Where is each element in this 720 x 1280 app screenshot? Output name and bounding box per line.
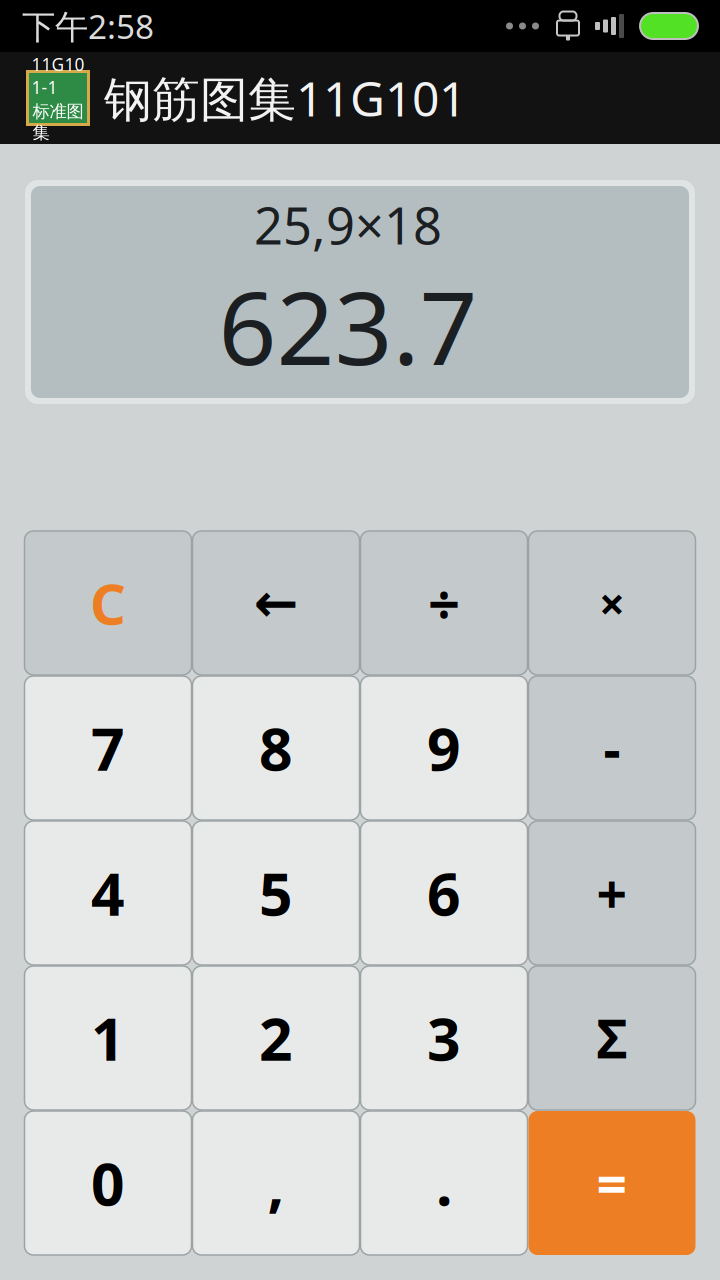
staticText: 标准图集 [32, 101, 83, 143]
staticText: 6 [427, 854, 461, 932]
staticText: + [596, 858, 627, 928]
button[interactable]: 7 [24, 676, 191, 820]
button[interactable]: 2 [192, 966, 359, 1110]
button[interactable]: - [528, 676, 695, 820]
staticText: , [267, 1144, 284, 1222]
staticText: - [603, 713, 620, 783]
button[interactable]: ÷ [360, 531, 527, 675]
staticText: 2 [259, 999, 293, 1077]
staticText: 4 [91, 854, 125, 932]
staticText: . [436, 1144, 452, 1222]
staticText: 9 [427, 709, 461, 787]
button[interactable]: 3 [360, 966, 527, 1110]
button[interactable]: Σ [528, 966, 695, 1110]
staticText: 5 [259, 854, 293, 932]
staticText: 3 [427, 999, 461, 1077]
button[interactable]: + [528, 821, 695, 965]
staticText: Σ [596, 1003, 627, 1073]
staticText: = [596, 1148, 627, 1218]
staticText: 25,9×18 [254, 191, 442, 258]
staticText: × [599, 573, 625, 633]
staticText: 7 [91, 709, 125, 787]
button[interactable]: 6 [360, 821, 527, 965]
button[interactable]: C [24, 531, 191, 675]
button[interactable]: , [192, 1111, 359, 1255]
button[interactable]: = [528, 1111, 695, 1255]
button[interactable]: 0 [24, 1111, 191, 1255]
button[interactable]: 8 [192, 676, 359, 820]
button[interactable]: . [360, 1111, 527, 1255]
button[interactable]: × [528, 531, 695, 675]
staticText: 钢筋图集11G101 [104, 66, 466, 130]
staticText: 11G101-1 [31, 53, 84, 99]
staticText: C [90, 566, 126, 640]
staticText: ÷ [428, 566, 460, 640]
button[interactable]: 4 [24, 821, 191, 965]
staticText: 1 [91, 999, 125, 1077]
staticText: 8 [259, 709, 293, 787]
button[interactable]: 1 [24, 966, 191, 1110]
staticText: 623.7 [218, 258, 477, 393]
button[interactable]: ← [192, 531, 359, 675]
staticText: 下午2:58 [22, 4, 154, 48]
staticText: ← [253, 573, 298, 633]
staticText: 0 [91, 1144, 125, 1222]
button[interactable]: 5 [192, 821, 359, 965]
button[interactable]: 9 [360, 676, 527, 820]
